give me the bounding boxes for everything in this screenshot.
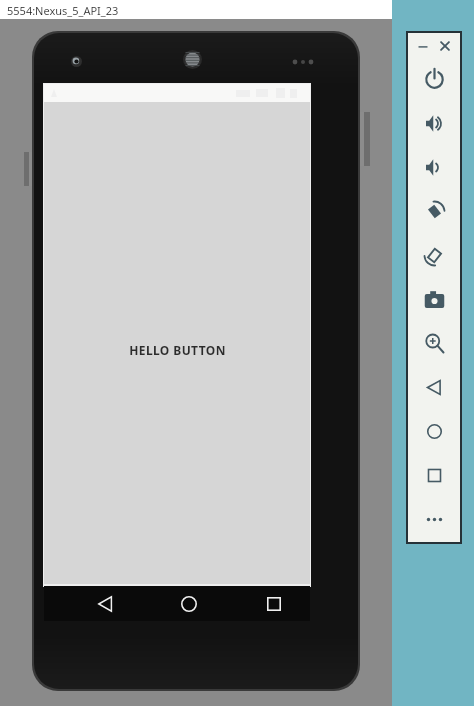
button[interactable]: Overview — [422, 463, 447, 488]
button[interactable]: Volume down — [422, 155, 447, 180]
button[interactable]: Back — [422, 375, 447, 400]
button[interactable]: Back — [92, 590, 120, 618]
button[interactable]: Take screenshot — [422, 287, 447, 312]
staticText: 5554:Nexus_5_API_23 — [7, 3, 119, 18]
button[interactable]: Minimize — [414, 37, 432, 55]
staticText: HELLO BUTTON — [129, 342, 226, 358]
button[interactable]: Rotate right — [422, 243, 447, 268]
button[interactable]: Home — [422, 419, 447, 444]
button[interactable]: More — [422, 507, 447, 532]
button[interactable]: Zoom — [422, 331, 447, 356]
button[interactable]: HELLO BUTTON — [44, 338, 310, 362]
button[interactable]: Volume up — [422, 111, 447, 136]
button[interactable]: Recent apps — [260, 590, 288, 618]
button[interactable]: Close — [436, 37, 454, 55]
button[interactable]: Power — [422, 67, 447, 92]
button[interactable]: Rotate left — [422, 199, 447, 224]
button[interactable]: Home — [175, 590, 203, 618]
